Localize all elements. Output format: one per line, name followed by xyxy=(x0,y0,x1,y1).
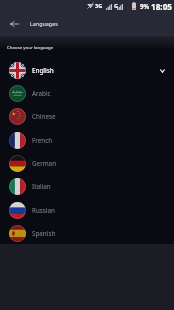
button[interactable]: Chinese xyxy=(0,105,174,128)
staticText: G xyxy=(114,2,119,10)
staticText: Arabic xyxy=(32,89,51,98)
button[interactable]: Back xyxy=(3,12,25,36)
staticText: 18:05 xyxy=(151,1,173,12)
button[interactable]: French xyxy=(0,129,174,152)
staticText: Russian xyxy=(32,206,55,215)
staticText: Choose your language xyxy=(7,44,54,50)
button[interactable]: Arabic xyxy=(0,82,174,105)
button[interactable]: English xyxy=(0,59,174,82)
staticText: Italian xyxy=(32,182,51,191)
staticText: 3G xyxy=(95,2,103,10)
staticText: 9% xyxy=(140,2,150,10)
staticText: Chinese xyxy=(32,112,56,121)
staticText: French xyxy=(32,136,53,145)
button[interactable]: Russian xyxy=(0,199,174,222)
button[interactable]: Spanish xyxy=(0,222,174,245)
button[interactable]: German xyxy=(0,152,174,175)
staticText: Spanish xyxy=(32,229,56,238)
staticText: German xyxy=(32,159,57,168)
staticText: Languages xyxy=(30,20,58,27)
button[interactable]: Italian xyxy=(0,175,174,198)
staticText: English xyxy=(32,66,54,75)
